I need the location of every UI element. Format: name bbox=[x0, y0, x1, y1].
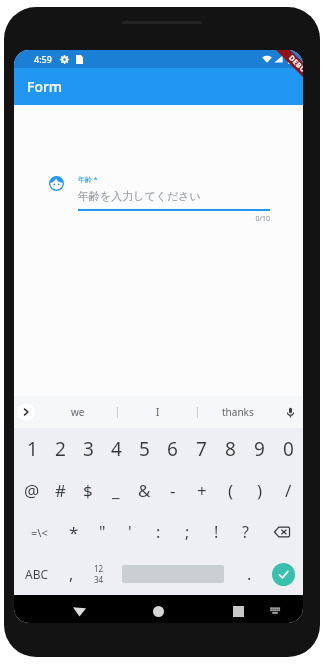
button[interactable]: : bbox=[144, 511, 173, 553]
button[interactable]: 3 bbox=[74, 428, 102, 469]
button[interactable]: * bbox=[60, 511, 88, 553]
staticText: : bbox=[156, 521, 161, 543]
button[interactable]: 4 bbox=[102, 428, 130, 469]
button[interactable]: we bbox=[38, 396, 117, 428]
button[interactable]: 1 bbox=[18, 428, 46, 469]
button[interactable]: ? bbox=[231, 511, 260, 553]
staticText: thanks bbox=[222, 405, 254, 419]
staticText: =\< bbox=[31, 525, 48, 540]
staticText: I bbox=[156, 405, 160, 419]
button[interactable]: Numbers bbox=[86, 553, 111, 595]
button[interactable]: Back bbox=[65, 598, 93, 623]
staticText: _ bbox=[112, 479, 120, 502]
staticText: ABC bbox=[25, 566, 49, 582]
button[interactable]: 8 bbox=[216, 428, 245, 469]
staticText: @ bbox=[24, 479, 40, 502]
staticText: 9 bbox=[254, 436, 265, 462]
staticText: # bbox=[55, 479, 66, 502]
staticText: 12 bbox=[94, 563, 104, 574]
staticText: 年齢 * bbox=[78, 175, 98, 185]
other: Age bbox=[49, 176, 64, 191]
button[interactable]: Home bbox=[144, 597, 172, 623]
staticText: + bbox=[197, 479, 207, 502]
button[interactable]: / bbox=[274, 469, 303, 511]
staticText: 5 bbox=[139, 436, 150, 462]
button[interactable]: Space bbox=[111, 553, 235, 595]
staticText: & bbox=[138, 479, 151, 502]
button[interactable]: # bbox=[46, 469, 74, 511]
staticText: 6 bbox=[167, 436, 178, 462]
button[interactable]: Hide keyboard bbox=[263, 597, 287, 623]
button[interactable]: _ bbox=[102, 469, 130, 511]
button[interactable]: thanks bbox=[198, 396, 277, 428]
staticText: , bbox=[69, 563, 74, 585]
button[interactable]: @ bbox=[18, 469, 46, 511]
staticText: 4 bbox=[111, 436, 122, 462]
staticText: * bbox=[69, 521, 79, 544]
button[interactable]: 5 bbox=[130, 428, 158, 469]
staticText: 8 bbox=[225, 436, 236, 462]
button[interactable]: " bbox=[88, 511, 116, 553]
button[interactable]: $ bbox=[74, 469, 102, 511]
staticText: ( bbox=[228, 479, 234, 502]
button[interactable]: ABC bbox=[18, 553, 56, 595]
button[interactable]: 7 bbox=[187, 428, 216, 469]
button[interactable]: ' bbox=[116, 511, 144, 553]
staticText: 34 bbox=[94, 574, 104, 585]
button[interactable]: More suggestions bbox=[14, 396, 38, 428]
button[interactable]: 6 bbox=[158, 428, 187, 469]
button[interactable]: + bbox=[187, 469, 216, 511]
staticText: 1 bbox=[27, 436, 38, 462]
button[interactable]: 2 bbox=[46, 428, 74, 469]
staticText: we bbox=[71, 405, 85, 419]
staticText: . bbox=[247, 563, 252, 585]
staticText: 2 bbox=[55, 436, 66, 462]
staticText: / bbox=[285, 479, 292, 502]
button[interactable]: ( bbox=[216, 469, 245, 511]
staticText: " bbox=[99, 521, 106, 543]
button[interactable]: ; bbox=[173, 511, 202, 553]
button[interactable]: . bbox=[235, 553, 264, 595]
staticText: 0 bbox=[283, 436, 294, 462]
button[interactable]: =\< bbox=[18, 511, 60, 553]
button[interactable]: ! bbox=[202, 511, 231, 553]
staticText: DEBUG bbox=[286, 53, 303, 79]
staticText: ; bbox=[185, 521, 190, 543]
staticText: 0/10 bbox=[78, 214, 270, 224]
staticText: ' bbox=[128, 521, 132, 543]
button[interactable]: - bbox=[158, 469, 187, 511]
button[interactable]: Backspace bbox=[260, 511, 303, 553]
staticText: 7 bbox=[196, 436, 207, 462]
button[interactable]: Voice input bbox=[277, 396, 303, 428]
button[interactable]: ) bbox=[245, 469, 274, 511]
button[interactable]: & bbox=[130, 469, 158, 511]
staticText: 年齢を入力してください bbox=[78, 189, 201, 203]
staticText: $ bbox=[83, 479, 93, 502]
staticText: ) bbox=[257, 479, 263, 502]
staticText: Form bbox=[27, 77, 63, 96]
button[interactable]: Done bbox=[264, 553, 303, 595]
button[interactable]: 0 bbox=[274, 428, 303, 469]
staticText: 4:59 bbox=[34, 53, 52, 65]
button[interactable]: Recents bbox=[224, 597, 252, 623]
staticText: ! bbox=[214, 521, 219, 543]
button[interactable]: I bbox=[118, 396, 197, 428]
staticText: ? bbox=[242, 521, 249, 543]
button[interactable]: , bbox=[56, 553, 86, 595]
button[interactable]: 9 bbox=[245, 428, 274, 469]
staticText: - bbox=[170, 479, 176, 502]
staticText: 3 bbox=[83, 436, 94, 462]
